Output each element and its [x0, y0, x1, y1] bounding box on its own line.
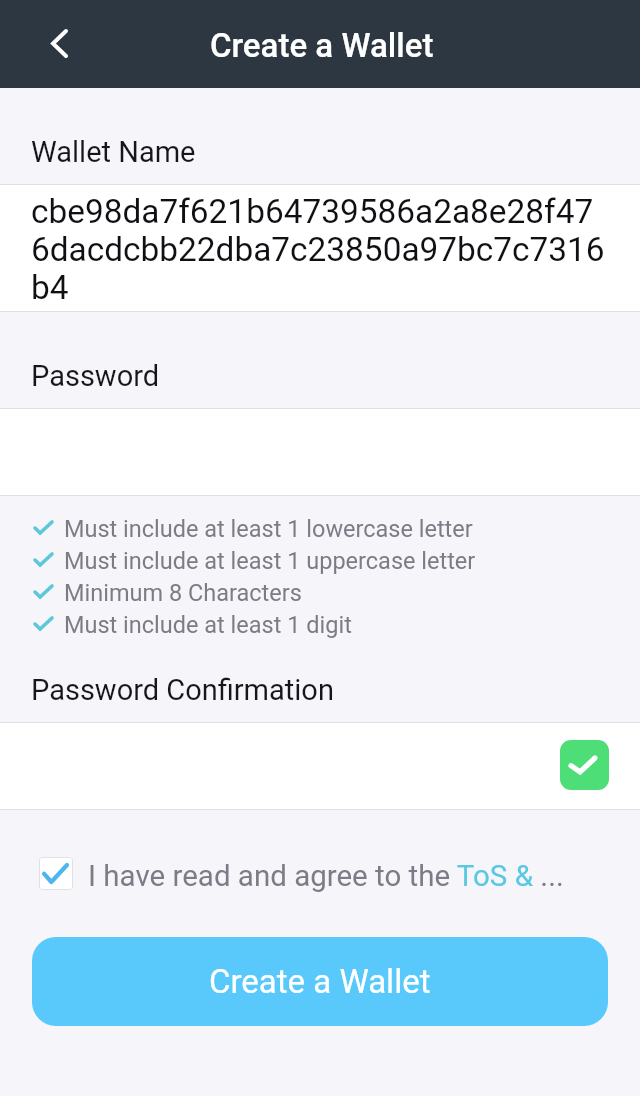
button[interactable]: I have read and agree to the ToS & ...	[39, 845, 564, 901]
staticText: Must include at least 1 digit	[64, 611, 352, 639]
staticText: Password Confirmation	[31, 673, 334, 707]
staticText: Minimum 8 Characters	[64, 579, 302, 607]
staticText: I have read and agree to the ToS & ...	[88, 859, 564, 894]
staticText: Password	[31, 359, 160, 393]
staticText: cbe98da7f621b64739586a2a8e28f476dacdcbb2…	[31, 192, 609, 307]
staticText: Create a Wallet	[210, 26, 434, 65]
button[interactable]: Password Confirmation	[0, 723, 640, 809]
button[interactable]: Back	[0, 0, 84, 88]
staticText: Create a Wallet	[209, 962, 431, 1001]
button[interactable]: Create a Wallet	[32, 937, 608, 1026]
staticText: Must include at least 1 uppercase letter	[64, 547, 476, 575]
staticText: Wallet Name	[31, 135, 196, 169]
button[interactable]: cbe98da7f621b64739586a2a8e28f476dacdcbb2…	[0, 185, 640, 311]
button[interactable]: Passwords match	[560, 740, 609, 790]
staticText: Must include at least 1 lowercase letter	[64, 515, 473, 543]
